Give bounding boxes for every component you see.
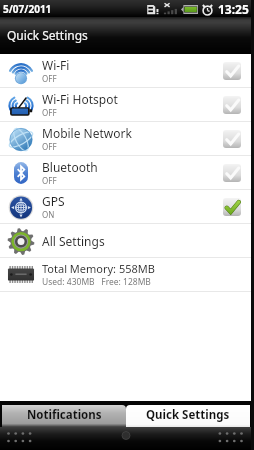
button[interactable]: Wi-Fi	[0, 54, 254, 87]
button[interactable]: All Settings	[0, 224, 254, 257]
staticText: Quick Settings	[7, 27, 88, 43]
staticText: OFF	[42, 107, 57, 118]
button[interactable]: Turn off	[223, 198, 241, 216]
staticText: GPS	[42, 193, 65, 209]
button[interactable]: Turn on	[223, 96, 241, 114]
staticText: 5/07/2011	[3, 2, 52, 16]
button[interactable]: Turn on	[223, 130, 241, 148]
staticText: OFF	[42, 141, 57, 152]
staticText: Wi-Fi	[42, 57, 70, 73]
staticText: Used: 430MB Free: 128MB	[42, 276, 151, 288]
staticText: Bluetooth	[42, 159, 98, 175]
staticText: OFF	[42, 175, 57, 186]
button[interactable]: Bluetooth	[0, 156, 254, 189]
staticText: Mobile Network	[42, 125, 132, 141]
button[interactable]: Mobile Network	[0, 122, 254, 155]
button[interactable]: GPS	[0, 190, 254, 223]
button[interactable]: Total Memory: 558MB	[0, 258, 254, 291]
button[interactable]: Notifications	[2, 405, 126, 427]
button[interactable]: Turn on	[223, 62, 241, 80]
button[interactable]: Wi-Fi Hotspot	[0, 88, 254, 121]
staticText: Quick Settings	[146, 407, 230, 423]
staticText: Notifications	[27, 407, 102, 423]
staticText: Wi-Fi Hotspot	[42, 91, 118, 107]
button[interactable]: Turn on	[223, 164, 241, 182]
staticText: Total Memory: 558MB	[42, 261, 155, 276]
staticText: ON	[42, 209, 55, 220]
staticText: 13:25	[218, 1, 249, 17]
button[interactable]: Quick Settings	[126, 405, 250, 427]
staticText: OFF	[42, 73, 57, 84]
staticText: All Settings	[42, 233, 105, 249]
